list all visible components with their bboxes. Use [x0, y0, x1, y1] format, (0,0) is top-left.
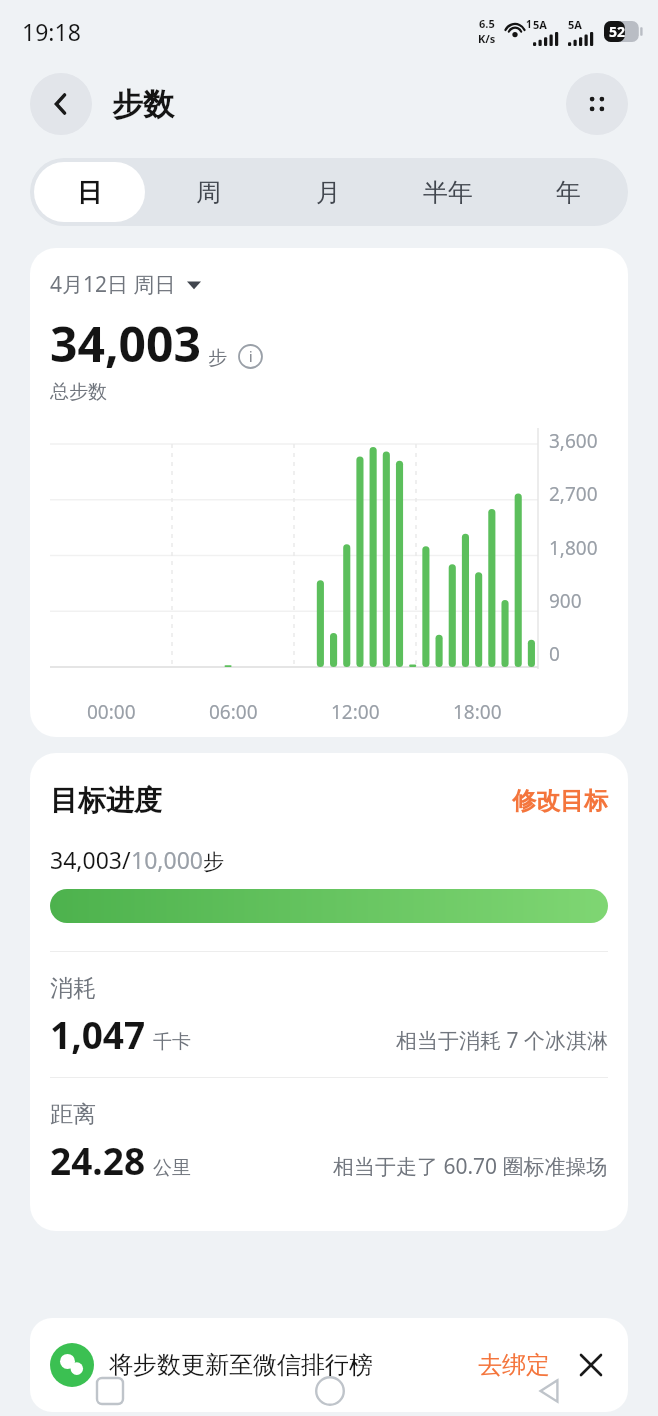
- staticText: 19:18: [22, 16, 81, 47]
- staticText: 消耗: [50, 974, 96, 1003]
- button[interactable]: 年: [512, 162, 624, 222]
- staticText: 距离: [50, 1100, 96, 1129]
- staticText: 5A: [568, 17, 582, 32]
- staticText: i: [249, 347, 253, 366]
- staticText: 千卡: [153, 1030, 191, 1054]
- staticText: 10,000: [131, 844, 203, 875]
- staticText: 4月12日 周日: [50, 270, 176, 299]
- staticText: 年: [556, 177, 581, 208]
- button[interactable]: 半年: [392, 162, 504, 222]
- staticText: 2,700: [549, 481, 598, 507]
- staticText: 0: [549, 641, 560, 667]
- button[interactable]: 去绑定: [478, 1350, 550, 1380]
- staticText: 将步数更新至微信排行榜: [109, 1350, 373, 1380]
- staticText: 1: [526, 17, 532, 31]
- staticText: 12:00: [331, 699, 380, 725]
- button[interactable]: More options: [566, 73, 628, 135]
- staticText: 月: [316, 177, 341, 208]
- button[interactable]: Back: [30, 73, 92, 135]
- staticText: 去绑定: [478, 1350, 550, 1380]
- staticText: K/s: [478, 31, 496, 46]
- button[interactable]: 日: [34, 162, 145, 222]
- staticText: 52: [609, 22, 626, 41]
- staticText: 步: [203, 849, 224, 875]
- staticText: 00:00: [87, 699, 136, 725]
- staticText: 周: [196, 177, 221, 208]
- staticText: 步数: [112, 85, 174, 124]
- staticText: 步: [208, 346, 227, 370]
- staticText: 1,047: [50, 1009, 146, 1059]
- button[interactable]: Recents: [0, 1366, 220, 1416]
- staticText: 900: [549, 588, 582, 614]
- button[interactable]: Close: [574, 1348, 608, 1382]
- staticText: 5A: [533, 17, 547, 32]
- button[interactable]: Info: [238, 344, 263, 369]
- staticText: 日: [77, 177, 102, 208]
- button[interactable]: 修改目标: [512, 786, 608, 816]
- button[interactable]: 4月12日 周日: [50, 270, 201, 299]
- button[interactable]: 周: [153, 162, 264, 222]
- staticText: 相当于走了 60.70 圈标准操场: [333, 1152, 608, 1181]
- staticText: 1,800: [549, 535, 598, 561]
- staticText: 公里: [153, 1156, 191, 1180]
- staticText: 06:00: [209, 699, 258, 725]
- staticText: 24.28: [50, 1135, 146, 1185]
- staticText: 总步数: [50, 380, 107, 404]
- staticText: 34,003/: [50, 844, 131, 875]
- staticText: 3,600: [549, 428, 598, 454]
- button[interactable]: Home: [220, 1366, 439, 1416]
- button[interactable]: Back: [439, 1366, 658, 1416]
- staticText: 18:00: [453, 699, 502, 725]
- staticText: 修改目标: [512, 786, 608, 816]
- staticText: 目标进度: [50, 783, 162, 818]
- button[interactable]: 月: [272, 162, 384, 222]
- staticText: 6.5: [479, 16, 495, 31]
- staticText: 相当于消耗 7 个冰淇淋: [396, 1026, 608, 1055]
- staticText: 34,003: [50, 311, 201, 376]
- staticText: 半年: [423, 177, 473, 208]
